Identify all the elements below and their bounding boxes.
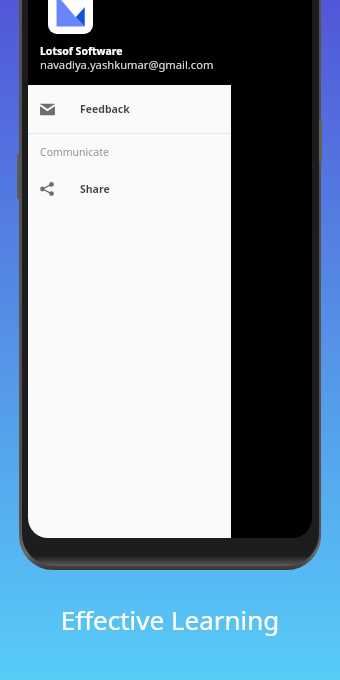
- staticText: navadiya.yashkumar@gmail.com: [40, 57, 214, 72]
- button[interactable]: Share: [28, 171, 231, 207]
- staticText: Effective Learning: [0, 602, 340, 637]
- staticText: Lotsof Software: [40, 44, 123, 58]
- staticText: Share: [80, 182, 110, 196]
- button[interactable]: Feedback: [28, 85, 231, 133]
- staticText: Feedback: [80, 102, 130, 116]
- staticText: Communicate: [40, 145, 109, 159]
